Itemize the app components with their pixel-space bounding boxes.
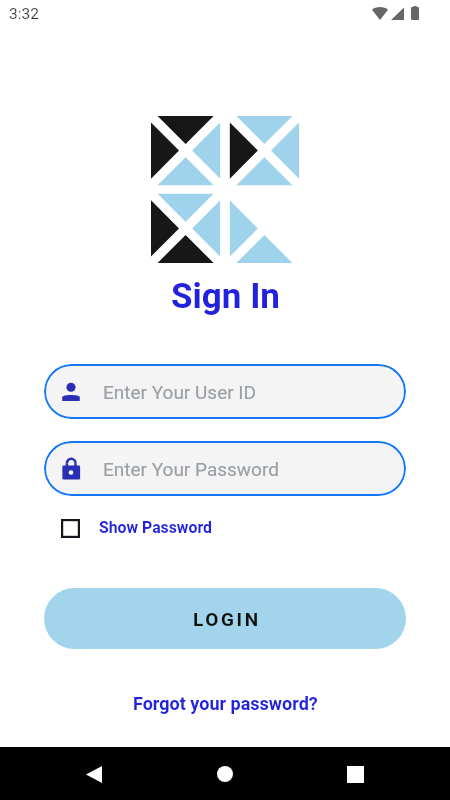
staticText: Show Password bbox=[99, 518, 212, 537]
staticText: Enter Your Password bbox=[103, 458, 279, 480]
button[interactable]: LOGIN bbox=[44, 588, 406, 649]
button[interactable]: Home bbox=[201, 750, 249, 798]
button[interactable]: Forgot your password? bbox=[129, 689, 322, 718]
staticText: Sign In bbox=[171, 276, 280, 317]
staticText: Enter Your User ID bbox=[103, 381, 256, 403]
button[interactable]: Show Password bbox=[61, 517, 210, 536]
button[interactable]: Recents bbox=[331, 750, 379, 798]
button[interactable]: Back bbox=[70, 750, 118, 798]
button[interactable]: Enter Your Password bbox=[44, 441, 406, 496]
button[interactable]: Enter Your User ID bbox=[44, 364, 406, 419]
staticText: LOGIN bbox=[193, 608, 261, 630]
staticText: 3:32 bbox=[9, 5, 39, 23]
